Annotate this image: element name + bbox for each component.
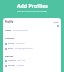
button[interactable]: Edit bbox=[54, 20, 59, 23]
staticText: 555 0188 bbox=[16, 42, 25, 45]
button[interactable]: Email bbox=[5, 47, 59, 50]
button[interactable]: Phone bbox=[5, 42, 59, 45]
staticText: Profile bbox=[5, 20, 14, 23]
staticText: Details bbox=[5, 54, 14, 57]
staticText: Name bbox=[5, 29, 12, 32]
staticText: Contact bbox=[5, 36, 15, 39]
staticText: Add Profiles bbox=[17, 2, 48, 9]
button[interactable]: Gender bbox=[5, 64, 59, 67]
staticText: Email bbox=[8, 47, 14, 50]
staticText: Female bbox=[17, 64, 24, 67]
button[interactable]: Address bbox=[5, 59, 59, 62]
staticText: Address bbox=[8, 59, 16, 62]
staticText: Park Ave bbox=[17, 59, 26, 62]
staticText: Phone bbox=[8, 42, 15, 45]
button[interactable]: Name bbox=[5, 29, 59, 32]
staticText: morgan@mail.com bbox=[15, 47, 33, 50]
staticText: Gender bbox=[8, 64, 16, 67]
staticText: Elizabeth Moore bbox=[13, 29, 29, 32]
staticText: add your personal information bbox=[17, 10, 48, 13]
